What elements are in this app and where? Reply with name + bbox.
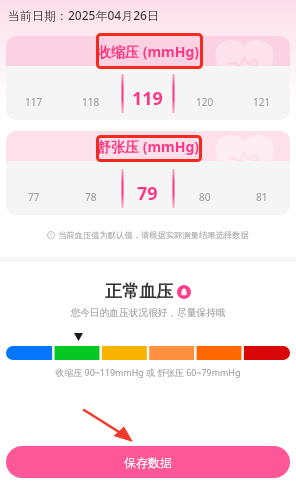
- staticText: 81: [256, 190, 268, 204]
- button[interactable]: 77: [6, 161, 62, 215]
- staticText: 您今日的血压状况很好，尽量保持哦: [0, 307, 296, 319]
- button[interactable]: 79: [119, 161, 176, 215]
- staticText: 正常血压: [105, 281, 173, 302]
- staticText: 120: [196, 95, 214, 109]
- button[interactable]: 78: [62, 161, 119, 215]
- staticText: 121: [253, 95, 271, 109]
- staticText: 78: [85, 190, 97, 204]
- button[interactable]: 80: [176, 161, 233, 215]
- button[interactable]: 121: [233, 66, 290, 120]
- button[interactable]: 81: [233, 161, 290, 215]
- staticText: 80: [199, 190, 211, 204]
- staticText: 收缩压 (mmHg): [97, 42, 199, 61]
- staticText: 79: [137, 181, 158, 206]
- button[interactable]: 117: [6, 66, 62, 120]
- staticText: 当前日期：2025年04月26日: [8, 7, 159, 23]
- button[interactable]: 保存数据: [6, 446, 290, 478]
- staticText: 119: [132, 86, 163, 111]
- staticText: 117: [25, 95, 43, 109]
- staticText: 当前血压值为默认值，请根据实际测量结果选择数据: [58, 230, 249, 240]
- staticText: 舒张压 (mmHg): [97, 137, 199, 156]
- button[interactable]: 120: [176, 66, 233, 120]
- staticText: 118: [82, 95, 100, 109]
- staticText: 收缩压 90~119mmHg 或 舒张压 60~79mmHg: [0, 366, 296, 378]
- staticText: 77: [28, 190, 40, 204]
- button[interactable]: 118: [62, 66, 119, 120]
- button[interactable]: 119: [119, 66, 176, 120]
- staticText: 保存数据: [124, 455, 172, 470]
